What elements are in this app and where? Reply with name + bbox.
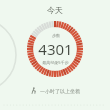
staticText: 4301 bbox=[38, 39, 73, 59]
button[interactable]: Activity bbox=[30, 87, 80, 94]
button[interactable]: 步数 bbox=[27, 21, 83, 77]
other: Activity bbox=[30, 87, 37, 94]
staticText: 一小时了以上坐着 bbox=[40, 88, 80, 94]
staticText: 今天 bbox=[47, 5, 63, 15]
staticText: 最高纪录5千步 bbox=[42, 60, 69, 65]
staticText: 步数 bbox=[52, 33, 60, 38]
